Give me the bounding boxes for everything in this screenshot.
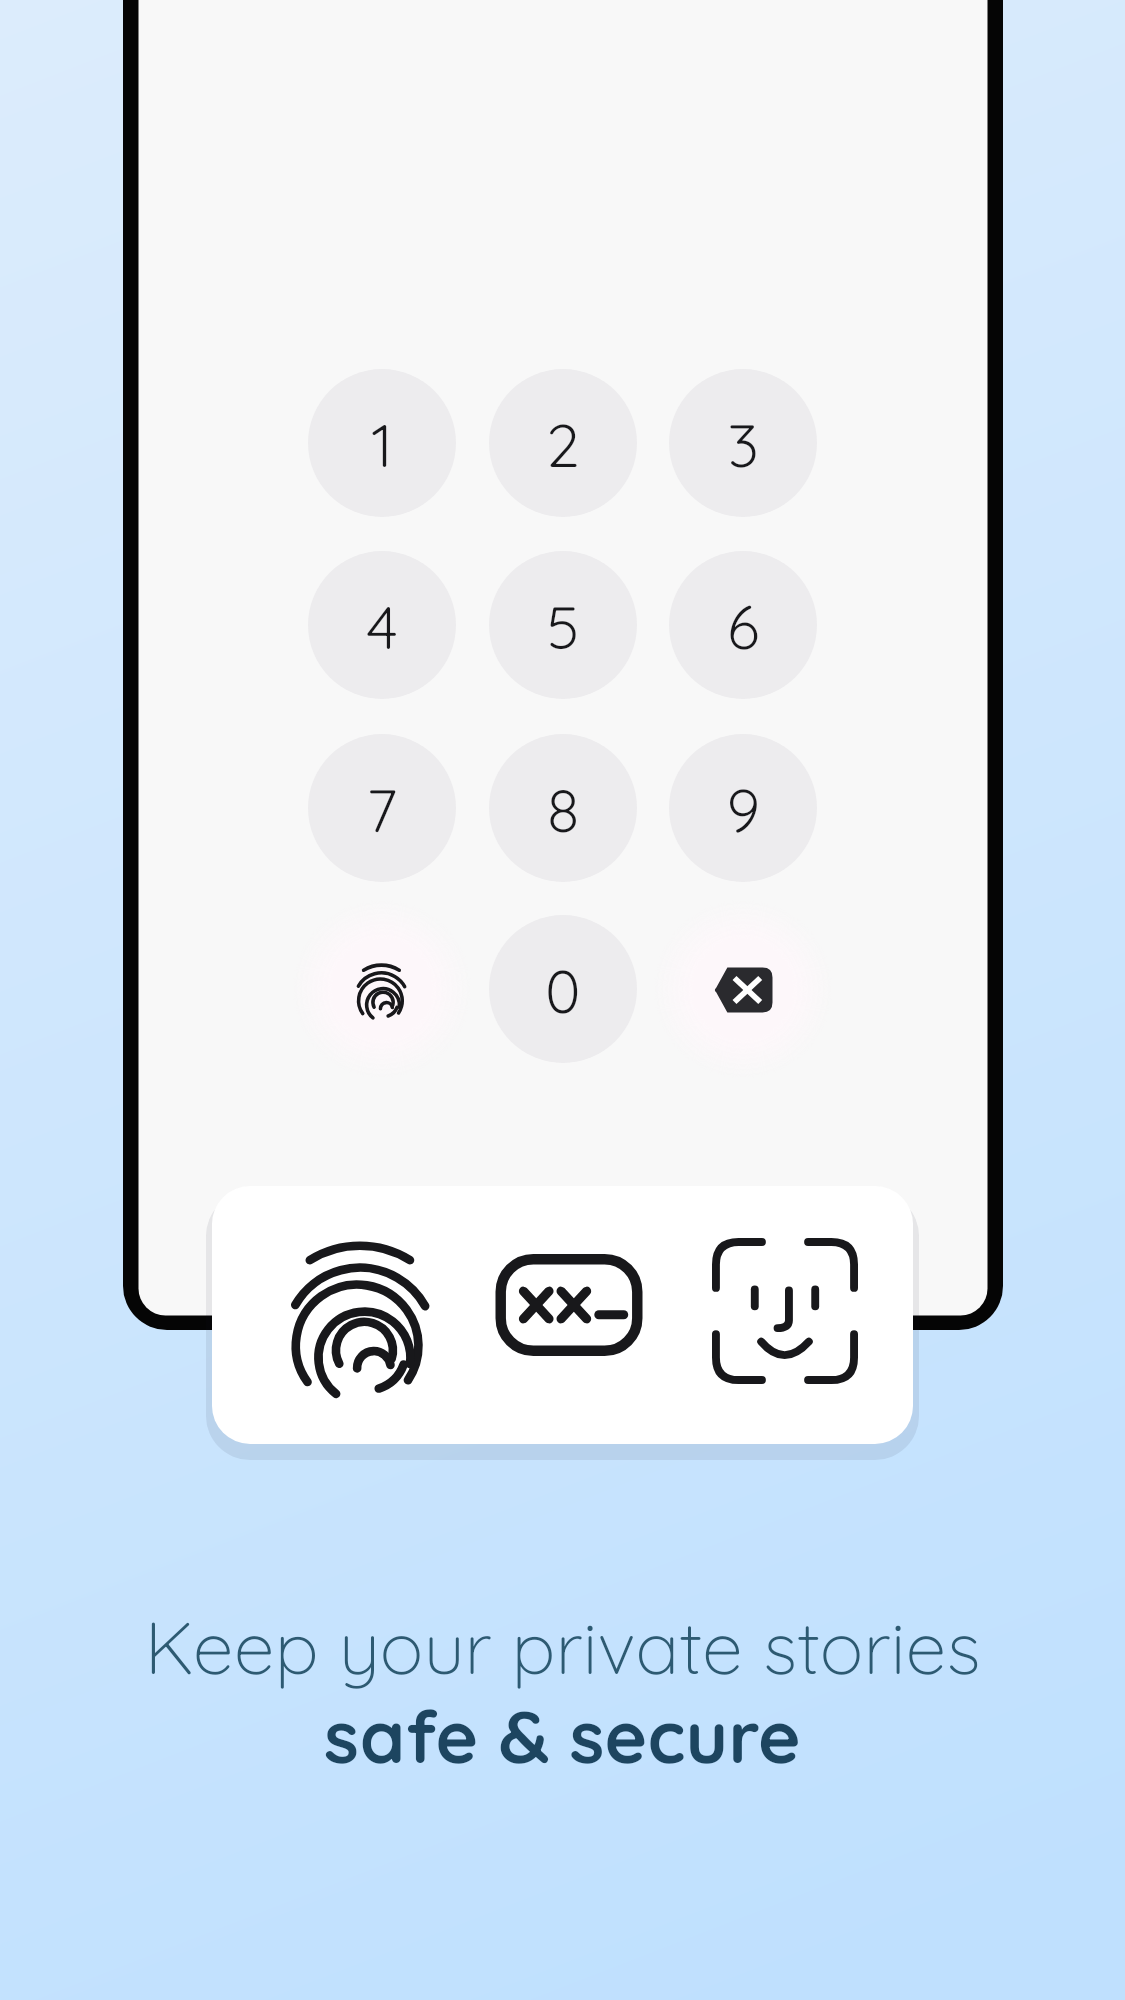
button[interactable]: Password unlock: [474, 1210, 664, 1400]
button[interactable]: 1: [308, 369, 456, 517]
button[interactable]: 3: [669, 369, 817, 517]
button[interactable]: 4: [308, 551, 456, 699]
button[interactable]: 2: [489, 369, 637, 517]
button[interactable]: Fingerprint unlock: [265, 1224, 455, 1414]
button[interactable]: 8: [489, 734, 637, 882]
button[interactable]: 5: [489, 551, 637, 699]
button[interactable]: 6: [669, 551, 817, 699]
button[interactable]: 9: [669, 734, 817, 882]
button[interactable]: 0: [489, 915, 637, 1063]
button[interactable]: Unlock with fingerprint: [308, 915, 456, 1063]
button[interactable]: Delete: [669, 915, 817, 1063]
button[interactable]: Face unlock: [690, 1216, 880, 1406]
button[interactable]: 7: [308, 734, 456, 882]
